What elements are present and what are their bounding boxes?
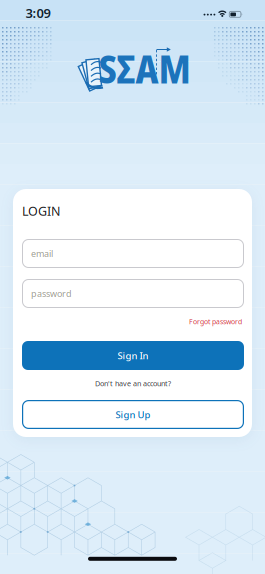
staticText: password [31, 287, 72, 300]
staticText: Sign In [117, 349, 148, 362]
textField[interactable]: email [31, 247, 244, 260]
secureTextField[interactable]: password [31, 287, 244, 300]
button[interactable]: Sign Up [22, 400, 244, 429]
staticText: SΣAM [98, 42, 190, 95]
staticText: Forgot password [189, 317, 242, 326]
staticText: 3:09 [25, 4, 50, 22]
button[interactable]: Sign In [22, 341, 244, 370]
staticText: email [31, 247, 53, 260]
button[interactable]: Forgot password [189, 317, 242, 326]
staticText: Don't have an account? [95, 379, 171, 388]
staticText: Sign Up [115, 408, 150, 421]
staticText: LOGIN [22, 202, 61, 219]
